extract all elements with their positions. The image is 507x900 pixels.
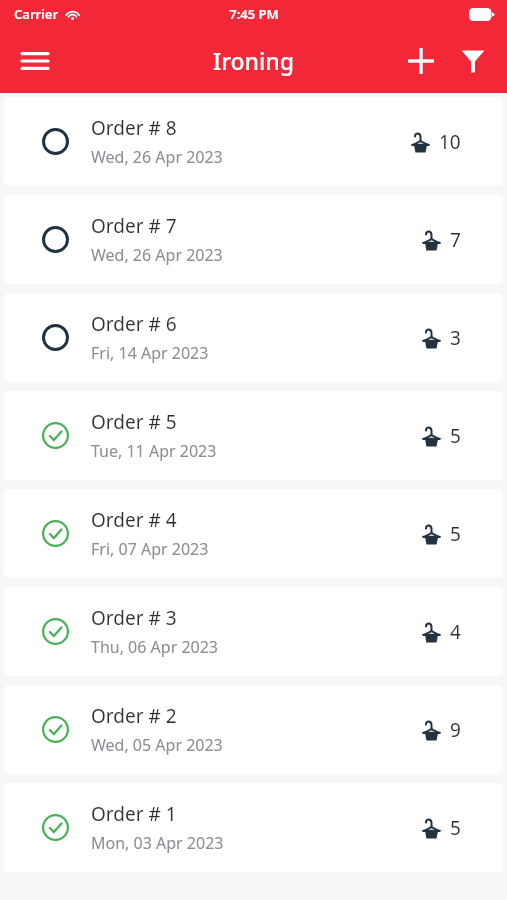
staticText: 5: [450, 521, 461, 547]
button[interactable]: Add order: [395, 35, 447, 87]
staticText: 4: [450, 619, 461, 645]
staticText: 7: [450, 227, 461, 253]
staticText: Wed, 05 Apr 2023: [91, 734, 223, 756]
staticText: Order # 1: [91, 801, 177, 827]
button[interactable]: Filter: [447, 35, 499, 87]
staticText: Order # 7: [91, 213, 177, 239]
button[interactable]: Order # 4: [4, 489, 503, 578]
staticText: Carrier: [14, 5, 59, 23]
button[interactable]: Order # 2: [4, 685, 503, 774]
staticText: 10: [439, 129, 461, 155]
staticText: Ironing: [213, 45, 294, 76]
button[interactable]: Order # 3: [4, 587, 503, 676]
button[interactable]: Order # 8: [4, 97, 503, 186]
button[interactable]: Order # 6: [4, 293, 503, 382]
staticText: 3: [450, 325, 461, 351]
staticText: Fri, 14 Apr 2023: [91, 342, 209, 364]
staticText: Order # 4: [91, 507, 177, 533]
staticText: Wed, 26 Apr 2023: [91, 244, 223, 266]
staticText: Fri, 07 Apr 2023: [91, 538, 209, 560]
staticText: 5: [450, 815, 461, 841]
button[interactable]: Order # 1: [4, 783, 503, 872]
button[interactable]: Menu: [10, 36, 60, 86]
staticText: 9: [450, 717, 461, 743]
button[interactable]: Order # 5: [4, 391, 503, 480]
staticText: Order # 2: [91, 703, 177, 729]
staticText: Order # 3: [91, 605, 177, 631]
staticText: Order # 6: [91, 311, 177, 337]
staticText: Wed, 26 Apr 2023: [91, 146, 223, 168]
staticText: 7:45 PM: [229, 5, 279, 23]
staticText: 5: [450, 423, 461, 449]
staticText: Order # 8: [91, 115, 177, 141]
staticText: Order # 5: [91, 409, 177, 435]
button[interactable]: Order # 7: [4, 195, 503, 284]
staticText: Mon, 03 Apr 2023: [91, 832, 224, 854]
staticText: Thu, 06 Apr 2023: [91, 636, 219, 658]
staticText: Tue, 11 Apr 2023: [91, 440, 217, 462]
